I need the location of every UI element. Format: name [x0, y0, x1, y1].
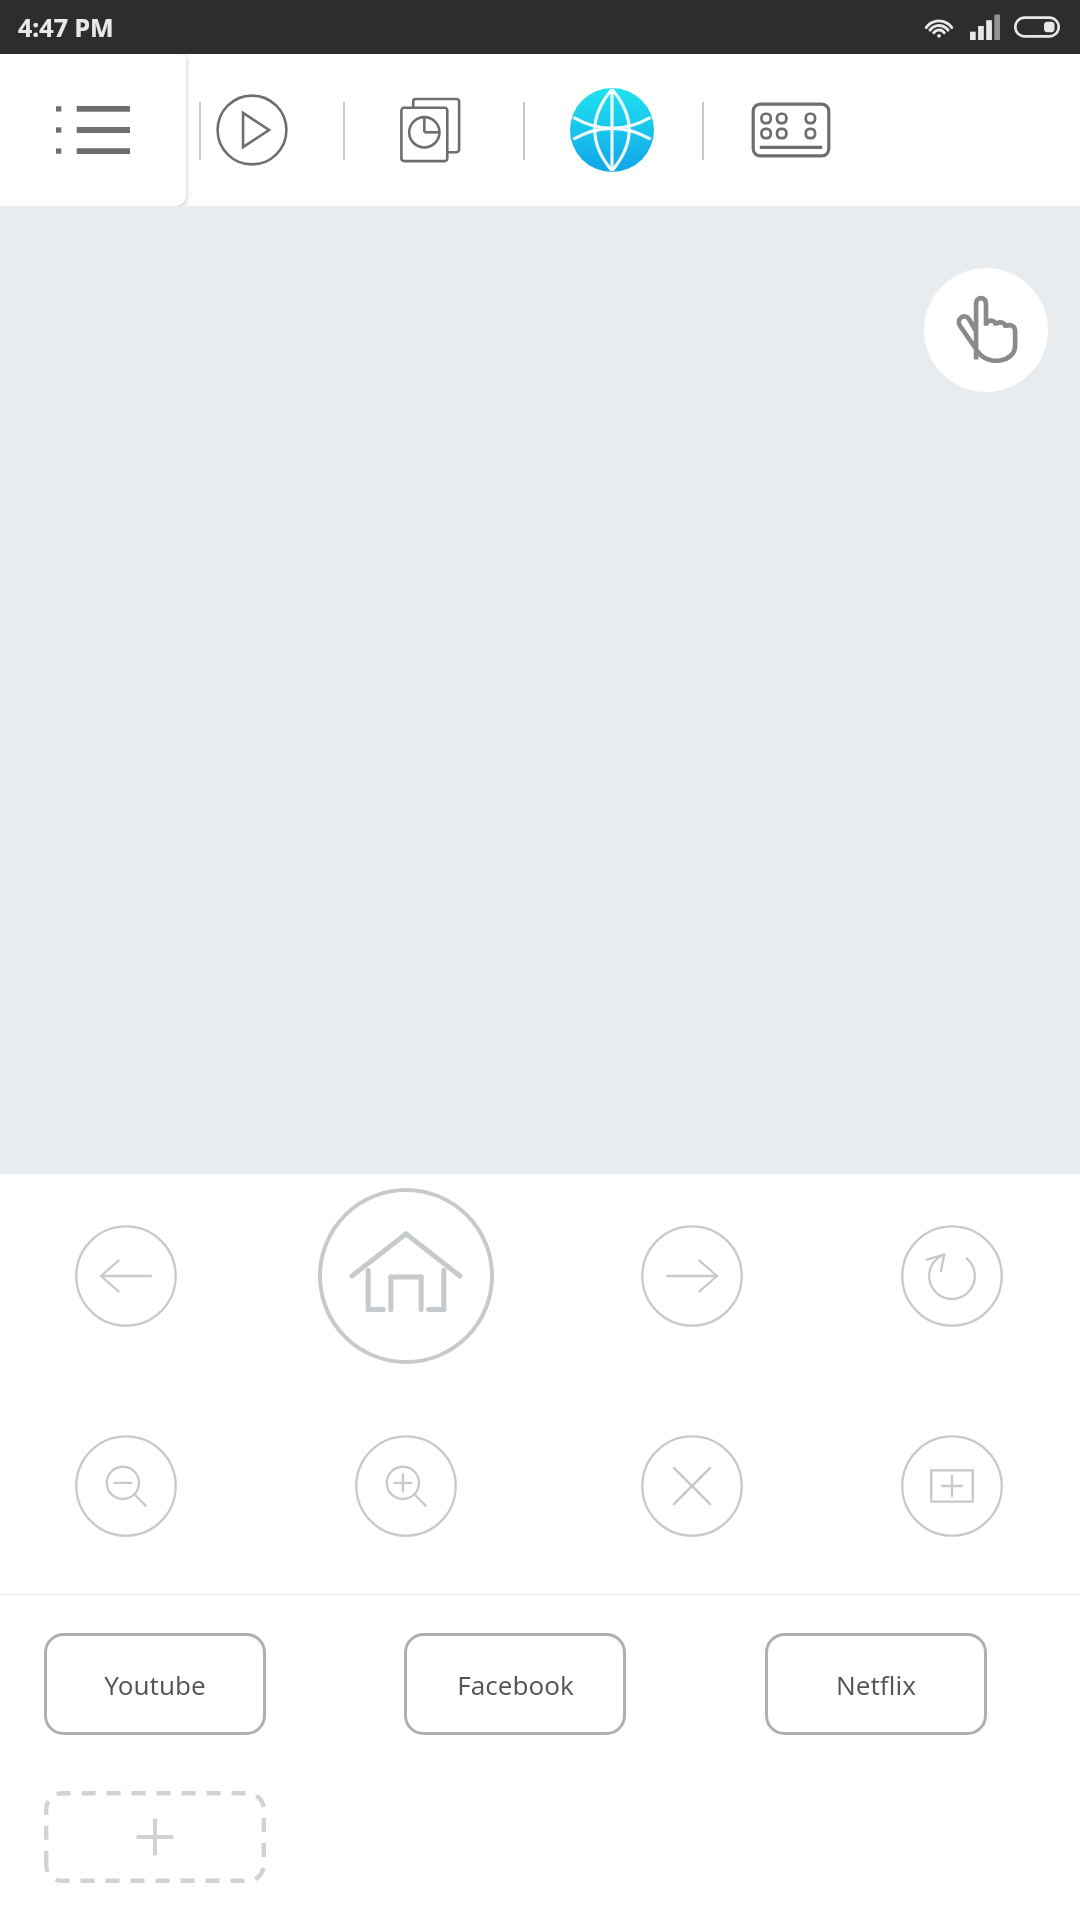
button[interactable]: Forward: [640, 1224, 744, 1328]
button[interactable]: Netflix: [765, 1633, 987, 1735]
button[interactable]: Zoom in: [354, 1434, 458, 1538]
button[interactable]: Back: [74, 1224, 178, 1328]
button[interactable]: Add shortcut: [44, 1791, 266, 1883]
button[interactable]: Keyboard: [739, 54, 843, 206]
button[interactable]: Zoom out: [74, 1434, 178, 1538]
button[interactable]: New tab: [900, 1434, 1004, 1538]
button[interactable]: Browser: [560, 54, 664, 206]
staticText: Facebook: [457, 1667, 574, 1702]
button[interactable]: Play: [200, 54, 304, 206]
button[interactable]: Documents: [379, 54, 483, 206]
staticText: Youtube: [104, 1667, 206, 1702]
staticText: 4:47 PM: [18, 10, 114, 44]
button[interactable]: Home: [316, 1186, 496, 1366]
button[interactable]: Pointer mode: [924, 268, 1048, 392]
button[interactable]: Close: [640, 1434, 744, 1538]
button[interactable]: Menu: [0, 54, 186, 206]
button[interactable]: Refresh: [900, 1224, 1004, 1328]
button[interactable]: Youtube: [44, 1633, 266, 1735]
staticText: Netflix: [836, 1667, 916, 1702]
button[interactable]: Facebook: [404, 1633, 626, 1735]
